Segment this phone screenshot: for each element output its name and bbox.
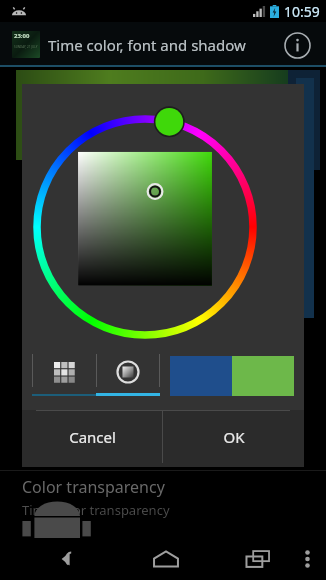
staticText: SUNDAY, 21 JULY (14, 45, 38, 49)
staticText: 23:00 (14, 32, 30, 40)
staticText: Time color, font and shadow (48, 35, 246, 55)
button[interactable]: More options (288, 538, 326, 580)
staticText: 10:59 (284, 2, 320, 21)
button[interactable]: 23:00 (0, 22, 326, 67)
button[interactable]: Hue and saturation picker (22, 84, 304, 354)
staticText: Cancel (69, 427, 116, 447)
button[interactable]: Home (138, 538, 194, 580)
button[interactable]: Recent apps (232, 538, 284, 580)
button[interactable]: Color wheel (96, 354, 160, 396)
button[interactable]: Palette grid (32, 354, 96, 396)
button[interactable]: OK (163, 411, 304, 463)
staticText: OK (223, 427, 245, 447)
button[interactable]: Back (38, 538, 98, 580)
staticText: GETANDROID (14, 539, 113, 559)
button[interactable]: Old and new color (170, 356, 294, 396)
staticText: Color transparency (22, 476, 165, 498)
button[interactable]: Information (278, 26, 316, 64)
button[interactable]: Cancel (22, 411, 162, 463)
staticText: Time color transparency (22, 501, 170, 519)
